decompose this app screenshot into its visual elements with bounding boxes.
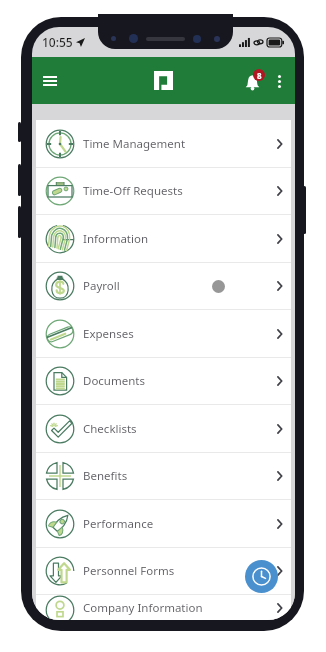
button[interactable]: Time Management [36,120,291,167]
staticText: Documents [83,373,145,389]
button[interactable]: Performance [36,500,291,547]
staticText: Payroll [83,278,120,294]
button[interactable]: Checklists [36,405,291,452]
button[interactable]: Clock in [245,560,278,593]
staticText: Benefits [83,468,128,484]
button[interactable]: Time-Off Requests [36,168,291,214]
button[interactable]: Personnel Forms [36,548,291,594]
staticText: Expenses [83,326,134,342]
button[interactable]: Notifications [237,66,267,96]
button[interactable]: More options [267,69,291,93]
staticText: 10:55 [42,34,73,50]
staticText: 8 [257,70,262,81]
staticText: Performance [83,516,154,532]
staticText: Time Management [83,136,186,152]
staticText: Information [83,231,149,247]
button[interactable]: Documents [36,358,291,404]
staticText: Time-Off Requests [83,183,183,199]
staticText: Personnel Forms [83,563,175,579]
staticText: Checklists [83,421,137,437]
button[interactable]: Benefits [36,453,291,499]
button[interactable]: Information [36,215,291,262]
button[interactable]: Menu [34,65,66,97]
button[interactable]: Payroll [36,263,291,309]
staticText: Company Information [83,600,203,616]
button[interactable]: Expenses [36,310,291,357]
button[interactable]: Company Information [36,595,291,620]
